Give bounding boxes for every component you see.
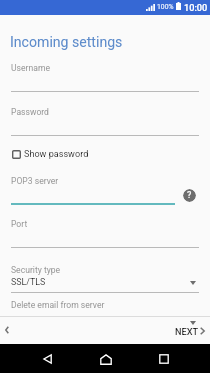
staticText: Show password xyxy=(24,149,89,160)
staticText: SSL/TLS xyxy=(11,277,46,287)
button[interactable]: Home xyxy=(92,345,120,373)
staticText: Password xyxy=(11,107,49,117)
button[interactable]: Recent apps xyxy=(150,345,178,373)
staticText: Incoming settings xyxy=(10,34,123,51)
staticText: NEXT xyxy=(175,326,199,337)
button[interactable]: NEXT xyxy=(170,319,210,341)
button[interactable]: Show password xyxy=(12,149,89,160)
staticText: POP3 server xyxy=(11,176,59,186)
button[interactable]: Previous xyxy=(0,319,14,341)
staticText: 10:00 xyxy=(184,2,208,13)
button[interactable]: Back xyxy=(33,345,61,373)
staticText: Port xyxy=(11,219,28,229)
button[interactable]: Help xyxy=(183,189,196,202)
staticText: Security type xyxy=(11,265,61,275)
staticText: 100% xyxy=(157,3,174,11)
staticText: Delete email from server xyxy=(11,300,105,310)
staticText: Username xyxy=(11,63,50,73)
staticText: ? xyxy=(187,190,192,201)
